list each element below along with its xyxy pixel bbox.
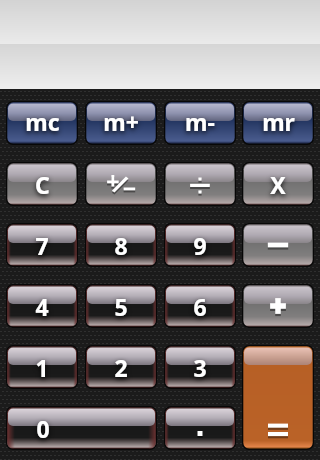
- button[interactable]: divide: [164, 162, 236, 206]
- staticText: 0: [36, 413, 50, 444]
- staticText: 9: [193, 230, 207, 261]
- button[interactable]: plus: [242, 284, 314, 328]
- staticText: 3: [193, 352, 207, 383]
- staticText: 2: [114, 352, 128, 383]
- button[interactable]: 8: [85, 223, 157, 267]
- staticText: 4: [35, 291, 49, 322]
- button[interactable]: X: [242, 162, 314, 206]
- button[interactable]: C: [6, 162, 78, 206]
- staticText: mc: [25, 106, 60, 137]
- button[interactable]: 4: [6, 284, 78, 328]
- button[interactable]: minus: [242, 223, 314, 267]
- button[interactable]: 7: [6, 223, 78, 267]
- button[interactable]: 5: [85, 284, 157, 328]
- button[interactable]: 1: [6, 345, 78, 389]
- button[interactable]: 6: [164, 284, 236, 328]
- staticText: C: [35, 169, 50, 200]
- staticText: 1: [35, 352, 49, 383]
- staticText: 7: [35, 230, 49, 261]
- staticText: 6: [193, 291, 207, 322]
- button[interactable]: 2: [85, 345, 157, 389]
- staticText: mr: [262, 106, 295, 137]
- button[interactable]: mr: [242, 101, 314, 145]
- staticText: 5: [114, 291, 128, 322]
- button[interactable]: 3: [164, 345, 236, 389]
- button[interactable]: 0: [6, 406, 157, 450]
- button[interactable]: decimal point: [164, 406, 236, 450]
- button[interactable]: plus minus: [85, 162, 157, 206]
- staticText: X: [270, 169, 286, 200]
- staticText: m+: [103, 106, 139, 137]
- button[interactable]: mc: [6, 101, 78, 145]
- button[interactable]: m-: [164, 101, 236, 145]
- staticText: 8: [114, 230, 128, 261]
- button[interactable]: 9: [164, 223, 236, 267]
- button[interactable]: m+: [85, 101, 157, 145]
- staticText: m-: [185, 106, 215, 137]
- button[interactable]: equals: [242, 345, 314, 450]
